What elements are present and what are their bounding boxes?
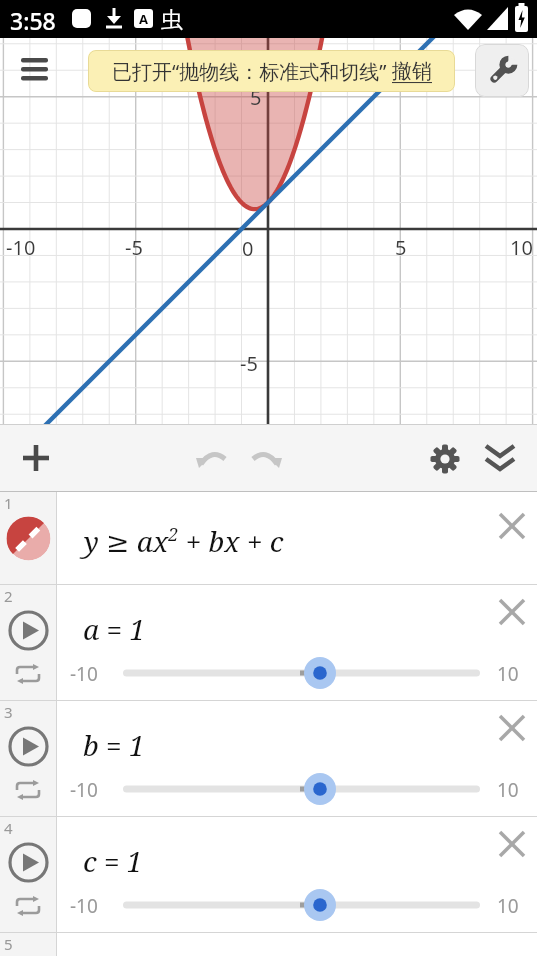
- staticText: 4: [4, 818, 13, 838]
- button[interactable]: [12, 434, 60, 482]
- staticText: 已打开“抛物线：标准式和切线”: [112, 58, 392, 85]
- button[interactable]: [475, 44, 529, 97]
- button[interactable]: [10, 893, 46, 919]
- button[interactable]: [6, 516, 51, 561]
- button[interactable]: [496, 712, 528, 744]
- button[interactable]: [188, 434, 236, 482]
- staticText: -10: [70, 893, 98, 919]
- staticText: 2: [4, 586, 13, 606]
- staticText: -10: [6, 234, 36, 261]
- staticText: 3:58: [10, 5, 56, 36]
- staticText: 3: [4, 702, 13, 722]
- staticText: A: [139, 10, 148, 28]
- button[interactable]: [7, 725, 49, 767]
- staticText: 10: [497, 777, 519, 803]
- staticText: -10: [70, 661, 98, 687]
- button[interactable]: [10, 661, 46, 687]
- button[interactable]: [7, 841, 49, 883]
- staticText: 虫: [161, 6, 183, 34]
- staticText: 5: [395, 234, 407, 261]
- staticText: 0: [242, 235, 254, 262]
- staticText: 5: [4, 934, 13, 954]
- button[interactable]: [496, 828, 528, 860]
- button[interactable]: [421, 435, 469, 483]
- staticText: c = 1: [83, 842, 143, 880]
- staticText: b = 1: [83, 726, 145, 764]
- staticText: 10: [510, 234, 533, 261]
- button[interactable]: [476, 435, 524, 483]
- button[interactable]: [496, 596, 528, 628]
- staticText: 5: [250, 84, 262, 111]
- button[interactable]: [10, 47, 60, 91]
- staticText: -10: [70, 777, 98, 803]
- staticText: 1: [4, 493, 13, 513]
- staticText: 10: [497, 893, 519, 919]
- staticText: -5: [240, 350, 258, 377]
- button[interactable]: [242, 434, 290, 482]
- staticText: a = 1: [83, 610, 146, 648]
- button[interactable]: 已打开“抛物线：标准式和切线”: [88, 50, 455, 92]
- staticText: 撤销: [392, 59, 432, 84]
- staticText: 10: [497, 661, 519, 687]
- button[interactable]: [10, 777, 46, 803]
- button[interactable]: [7, 609, 49, 651]
- staticText: -5: [125, 234, 143, 261]
- staticText: y ≥ ax2 + bx + c: [84, 522, 284, 560]
- button[interactable]: [496, 510, 528, 542]
